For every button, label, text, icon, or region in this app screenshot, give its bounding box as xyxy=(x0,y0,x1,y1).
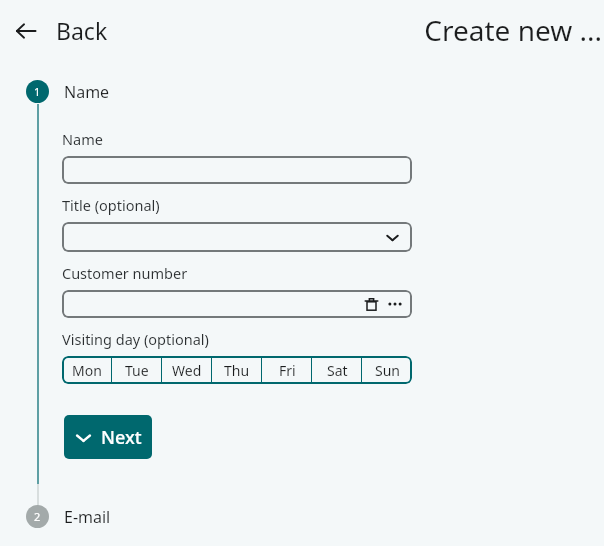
button[interactable]: 1 xyxy=(26,80,110,103)
button[interactable]: Mon xyxy=(62,356,112,384)
staticText: Fri xyxy=(279,361,296,380)
staticText: 2 xyxy=(34,509,41,524)
staticText: Sun xyxy=(375,361,400,380)
staticText: Title (optional) xyxy=(62,195,160,215)
staticText: Name xyxy=(62,129,103,149)
staticText: Customer number xyxy=(62,263,188,283)
staticText: Wed xyxy=(172,361,202,380)
staticText: 1 xyxy=(34,84,41,99)
button[interactable]: Tue xyxy=(112,356,162,384)
staticText: Mon xyxy=(72,361,102,380)
staticText: Next xyxy=(101,425,142,450)
staticText: Sat xyxy=(327,361,348,380)
button[interactable]: Thu xyxy=(212,356,262,384)
button[interactable]: Customer number input xyxy=(62,290,412,318)
button[interactable]: Select title xyxy=(62,222,412,252)
staticText: Tue xyxy=(125,361,149,380)
button[interactable]: Name input xyxy=(62,156,412,184)
staticText: Visiting day (optional) xyxy=(62,329,209,349)
staticText: Thu xyxy=(224,361,250,380)
button[interactable]: Sat xyxy=(312,356,362,384)
button[interactable]: Back xyxy=(8,9,114,52)
button[interactable]: Fri xyxy=(262,356,312,384)
button[interactable]: Wed xyxy=(162,356,212,384)
staticText: Create new ... xyxy=(424,11,602,49)
staticText: E-mail xyxy=(64,506,111,528)
staticText: Back xyxy=(56,15,108,46)
button[interactable]: Sun xyxy=(362,356,412,384)
button[interactable]: 2 xyxy=(26,505,111,528)
button[interactable]: Delete xyxy=(360,293,382,315)
button[interactable]: More options xyxy=(384,293,406,315)
staticText: Name xyxy=(64,81,110,103)
button[interactable]: Next xyxy=(64,415,152,459)
other: Back xyxy=(14,19,38,43)
